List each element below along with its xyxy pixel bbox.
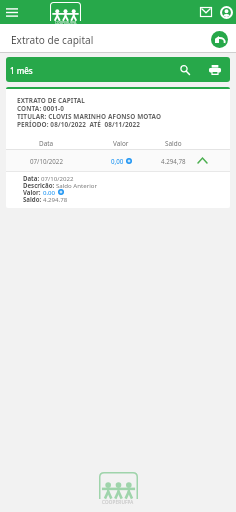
button[interactable]: 07/10/2022	[6, 150, 230, 171]
button[interactable]: Pesquisar	[167, 57, 202, 82]
staticText: COOPERUFPA	[55, 21, 77, 25]
staticText: 4.294,78	[161, 157, 186, 165]
staticText: Saldo Anterior	[56, 181, 97, 188]
staticText: 07/10/2022	[41, 174, 74, 181]
staticText: Valor	[113, 139, 129, 148]
staticText: Extrato de capital	[11, 33, 94, 47]
staticText: 0,00	[111, 157, 124, 165]
button[interactable]: Voltar	[211, 31, 228, 48]
staticText: Saldo	[165, 139, 182, 148]
staticText: 07/10/2022	[30, 157, 63, 165]
button[interactable]: Conta	[215, 0, 234, 24]
staticText: TITULAR: CLOVIS MARINHO AFONSO MOTAO	[17, 112, 162, 120]
staticText: Valor:	[23, 188, 43, 195]
staticText: Data:	[23, 174, 41, 181]
staticText: PERÍODO: 08/10/2022 ATÉ 08/11/2022	[17, 120, 141, 128]
button[interactable]: Menu	[0, 0, 24, 24]
staticText: COOPERUFPA	[102, 499, 134, 505]
staticText: Descrição:	[23, 181, 56, 188]
staticText: 0,00	[43, 188, 56, 195]
staticText: EXTRATO DE CAPITAL	[17, 96, 85, 104]
button[interactable]: Imprimir	[202, 57, 227, 82]
staticText: 1 mês	[10, 65, 33, 76]
staticText: Saldo:	[23, 195, 43, 202]
staticText: CONTA: 0001-0	[17, 104, 64, 112]
staticText: Data	[39, 139, 54, 148]
staticText: 4.294,78	[43, 195, 68, 202]
button[interactable]: Mensagens	[196, 0, 215, 24]
